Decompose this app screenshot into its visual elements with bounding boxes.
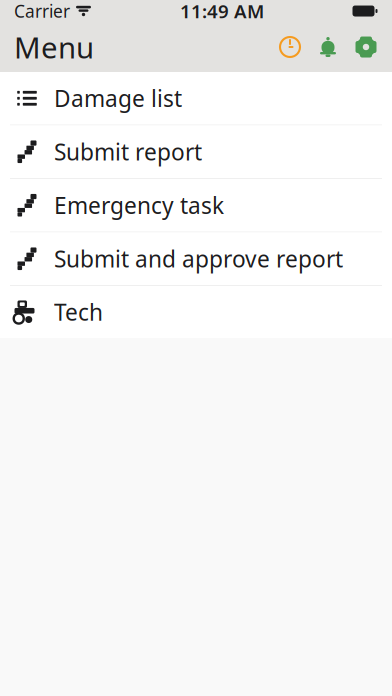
staticText: Damage list <box>54 83 182 113</box>
staticText: Emergency task <box>54 190 224 220</box>
button[interactable]: Notifications <box>309 25 347 69</box>
staticText: Carrier <box>14 0 70 22</box>
button[interactable]: Submit report <box>0 125 392 179</box>
button[interactable]: Recent activity <box>271 25 309 69</box>
staticText: Tech <box>54 297 103 327</box>
button[interactable]: Settings <box>347 25 385 69</box>
button[interactable]: Submit and approve report <box>0 232 392 286</box>
staticText: Menu <box>14 27 94 66</box>
button[interactable]: Damage list <box>0 72 392 125</box>
button[interactable]: Emergency task <box>0 179 392 232</box>
button[interactable]: Tech <box>0 286 392 338</box>
staticText: Submit and approve report <box>54 244 343 274</box>
staticText: Submit report <box>54 137 202 167</box>
staticText: 11:49 AM <box>180 0 264 23</box>
